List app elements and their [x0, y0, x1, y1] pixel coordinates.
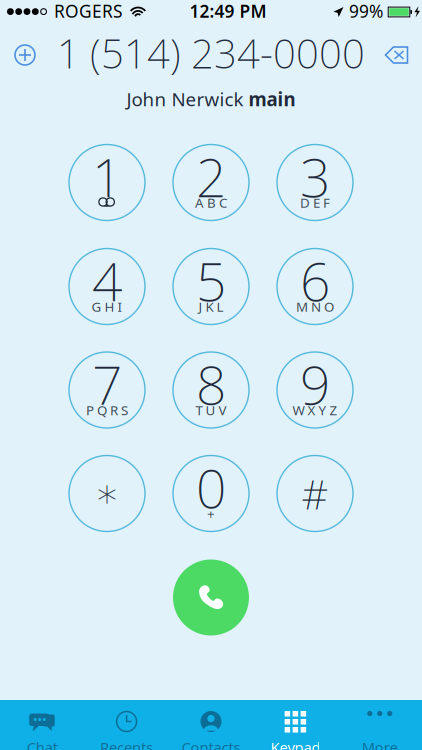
staticText: 4	[92, 245, 122, 316]
staticText: 1	[92, 141, 122, 212]
staticText: Recents	[100, 737, 153, 750]
button[interactable]: Keypad	[253, 700, 338, 750]
button[interactable]: 5	[173, 248, 249, 324]
staticText: 6	[300, 245, 330, 316]
button[interactable]: 3	[277, 144, 353, 220]
staticText: #	[301, 466, 328, 521]
staticText: T U V	[195, 401, 226, 419]
button[interactable]: Delete	[376, 34, 418, 76]
staticText: ∗	[94, 471, 119, 516]
button[interactable]: 9	[277, 352, 353, 428]
button[interactable]: 0	[173, 455, 249, 531]
button[interactable]: Call	[173, 559, 249, 635]
staticText: 12:49 PM	[189, 0, 266, 22]
staticText: Contacts	[181, 737, 240, 750]
staticText: 9	[300, 349, 330, 419]
button[interactable]: Contacts	[169, 700, 253, 750]
button[interactable]: 4	[69, 248, 145, 324]
button[interactable]: ∗	[69, 455, 145, 531]
staticText: M N O	[296, 298, 334, 315]
button[interactable]: 1	[69, 144, 145, 220]
staticText: Chat	[27, 737, 58, 750]
staticText: John Nerwick	[126, 87, 243, 111]
staticText: +	[207, 505, 215, 522]
staticText: 3	[300, 141, 330, 212]
staticText: Keypad	[270, 737, 320, 750]
button[interactable]: 2	[173, 144, 249, 220]
staticText: 0	[196, 452, 226, 523]
staticText: 8	[196, 349, 226, 419]
button[interactable]: Recents	[84, 700, 169, 750]
staticText: P Q R S	[86, 401, 128, 419]
staticText: 99%	[349, 0, 383, 22]
staticText: main	[248, 87, 295, 111]
button[interactable]: More	[338, 700, 422, 750]
staticText: ROGERS	[54, 0, 123, 22]
button[interactable]: #	[277, 455, 353, 531]
staticText: 2	[196, 141, 226, 212]
staticText: More	[362, 737, 398, 750]
button[interactable]: Add contact	[4, 34, 46, 76]
staticText: 5	[196, 245, 226, 316]
staticText: G H I	[91, 298, 122, 315]
staticText: 1 (514) 234-0000	[57, 26, 365, 79]
staticText: W X Y Z	[292, 401, 337, 419]
button[interactable]: Chat	[0, 700, 84, 750]
staticText: D E F	[300, 194, 330, 211]
button[interactable]: 7	[69, 352, 145, 428]
staticText: A B C	[195, 194, 227, 211]
staticText: 7	[92, 349, 122, 419]
staticText: J K L	[198, 298, 223, 315]
button[interactable]: 6	[277, 248, 353, 324]
button[interactable]: 8	[173, 352, 249, 428]
